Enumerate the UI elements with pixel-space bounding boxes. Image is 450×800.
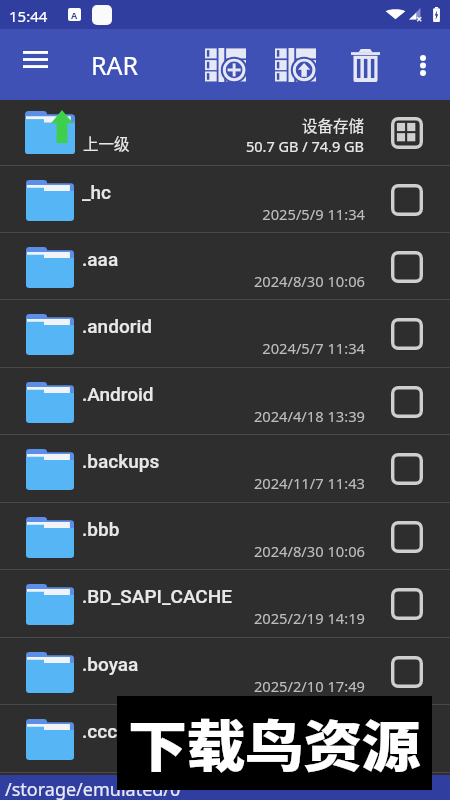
button[interactable]: .andorid — [0, 300, 450, 368]
staticText: _hc — [82, 181, 112, 203]
button[interactable]: Select .andorid — [380, 300, 434, 367]
staticText: 2024/8/30 10:06 — [0, 271, 365, 291]
button[interactable]: Select .Android — [380, 368, 434, 435]
staticText: 下载鸟资源 — [128, 703, 421, 782]
staticText: .Android — [82, 383, 154, 405]
button[interactable]: Add to archive — [199, 42, 252, 88]
staticText: .ccc — [82, 720, 118, 742]
staticText: 2025/1/1 10:00 — [0, 743, 365, 763]
staticText: 15:44 — [9, 6, 48, 26]
staticText: /storage/emulated/0 — [5, 777, 181, 800]
staticText: .bbb — [82, 518, 120, 540]
button[interactable]: Select .ccc — [380, 705, 434, 772]
button[interactable]: _hc — [0, 166, 450, 233]
staticText: 2024/4/18 13:39 — [0, 406, 365, 426]
button[interactable]: Menu — [10, 34, 60, 84]
staticText: 50.7 GB / 74.9 GB — [0, 136, 364, 156]
button[interactable]: Select .aaa — [380, 233, 434, 300]
staticText: 2025/2/19 14:19 — [0, 608, 365, 628]
staticText: 2025/5/9 11:34 — [0, 204, 365, 224]
button[interactable]: .bbb — [0, 503, 450, 570]
button[interactable]: Select .BD_SAPI_CACHE — [380, 570, 434, 637]
staticText: 2024/11/7 11:43 — [0, 473, 365, 493]
staticText: .BD_SAPI_CACHE — [82, 585, 233, 607]
staticText: 2024/8/30 10:06 — [0, 541, 365, 561]
button[interactable]: Delete — [341, 42, 389, 88]
button[interactable]: .Android — [0, 368, 450, 435]
button[interactable]: .aaa — [0, 233, 450, 300]
button[interactable]: .BD_SAPI_CACHE — [0, 570, 450, 638]
button[interactable]: .backups — [0, 435, 450, 503]
staticText: A — [71, 9, 78, 21]
button[interactable]: More options — [403, 42, 443, 88]
button[interactable]: Extract archive — [269, 42, 322, 88]
staticText: 设备存储 — [0, 114, 364, 136]
staticText: .andorid — [82, 315, 152, 337]
button[interactable]: .ccc — [0, 705, 450, 773]
button[interactable]: Select .bbb — [380, 503, 434, 570]
staticText: 2025/2/10 17:49 — [0, 676, 365, 696]
button[interactable]: Select .backups — [380, 435, 434, 502]
button[interactable]: Grid view — [380, 100, 434, 166]
button[interactable]: .boyaa — [0, 638, 450, 705]
button[interactable]: Select .boyaa — [380, 638, 434, 705]
staticText: .backups — [82, 450, 160, 472]
button[interactable]: 上一级 — [0, 100, 450, 166]
staticText: .boyaa — [82, 653, 139, 675]
staticText: RAR — [91, 48, 139, 82]
button[interactable]: Select _hc — [380, 166, 434, 233]
staticText: 上一级 — [83, 132, 130, 154]
staticText: 2024/5/7 11:34 — [0, 338, 365, 358]
staticText: .aaa — [82, 248, 119, 270]
